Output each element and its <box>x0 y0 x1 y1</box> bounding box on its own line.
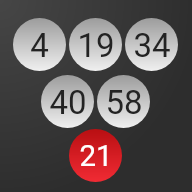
button[interactable]: 19 <box>69 18 122 71</box>
button[interactable]: 34 <box>125 18 178 71</box>
button[interactable]: 21 <box>69 129 122 182</box>
staticText: 58 <box>105 83 143 122</box>
staticText: 21 <box>79 139 113 174</box>
staticText: 40 <box>49 83 87 122</box>
staticText: 19 <box>77 26 115 65</box>
button[interactable]: 40 <box>41 75 94 128</box>
staticText: 4 <box>30 26 49 65</box>
button[interactable]: 58 <box>97 75 150 128</box>
button[interactable]: 4 <box>13 18 66 71</box>
staticText: 34 <box>133 26 171 65</box>
